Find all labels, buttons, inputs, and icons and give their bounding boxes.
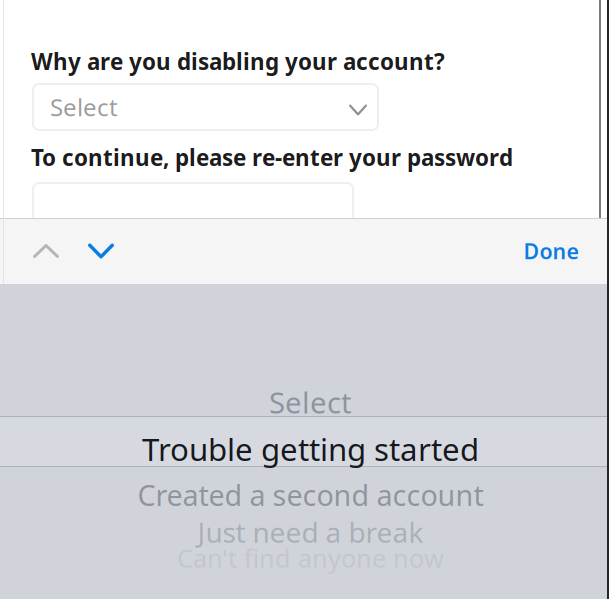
- button[interactable]: Password: [33, 183, 353, 227]
- button[interactable]: Previous field: [20, 219, 72, 283]
- button[interactable]: Created a second account: [6, 475, 609, 515]
- staticText: Trouble getting started: [142, 428, 479, 470]
- button[interactable]: Just need a break: [6, 512, 609, 552]
- staticText: Can't find anyone now: [177, 541, 444, 575]
- button[interactable]: Done: [509, 219, 593, 283]
- button[interactable]: Can't find anyone now: [6, 538, 609, 578]
- staticText: Created a second account: [137, 475, 483, 514]
- staticText: Select: [269, 382, 352, 422]
- staticText: Done: [523, 237, 578, 265]
- staticText: Select: [50, 91, 118, 123]
- button[interactable]: Next field: [75, 219, 127, 283]
- staticText: Why are you disabling your account?: [31, 46, 445, 76]
- staticText: To continue, please re-enter your passwo…: [31, 142, 513, 172]
- button[interactable]: Trouble getting started: [6, 429, 609, 469]
- button[interactable]: Select: [6, 382, 609, 422]
- button[interactable]: Select: [33, 84, 378, 130]
- staticText: Just need a break: [197, 513, 423, 551]
